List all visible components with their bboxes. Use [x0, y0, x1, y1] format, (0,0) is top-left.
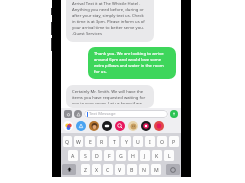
staticText: Z — [84, 166, 87, 173]
button[interactable]: Hello John Smith, this is your VIP Pre-A… — [66, 0, 154, 42]
button[interactable]: M — [151, 164, 161, 175]
button[interactable]: A — [68, 150, 78, 161]
staticText: S — [84, 152, 87, 159]
staticText: V — [118, 166, 122, 173]
button[interactable]: Z — [81, 164, 90, 175]
staticText: N — [142, 166, 146, 173]
button[interactable]: Apps — [74, 110, 82, 118]
button[interactable]: R — [97, 136, 107, 147]
staticText: M — [154, 166, 159, 173]
button[interactable]: App 6 — [141, 121, 151, 131]
button[interactable]: F — [104, 150, 114, 161]
button[interactable]: App 2 — [89, 121, 99, 131]
staticText: J — [144, 152, 146, 159]
button[interactable]: L — [164, 150, 174, 161]
staticText: I — [149, 138, 151, 145]
staticText: D — [95, 152, 99, 159]
button[interactable]: H — [128, 150, 138, 161]
button[interactable]: App 4 — [115, 121, 125, 131]
button[interactable]: Backspace — [166, 164, 180, 175]
button[interactable]: I — [145, 136, 155, 147]
staticText: E — [89, 138, 92, 145]
staticText: T — [113, 138, 116, 145]
staticText: X — [95, 166, 99, 173]
staticText: Text Message — [89, 111, 116, 117]
button[interactable]: P — [169, 136, 179, 147]
button[interactable]: D — [92, 150, 102, 161]
button[interactable]: Camera — [64, 110, 72, 118]
button[interactable]: S — [80, 150, 90, 161]
button[interactable]: Q — [63, 136, 72, 147]
button[interactable]: W — [74, 136, 83, 147]
button[interactable]: B — [127, 164, 137, 175]
button[interactable]: C — [103, 164, 113, 175]
staticText: C — [106, 166, 110, 173]
staticText: Thank you. We are looking to arrive arou… — [94, 51, 170, 75]
button[interactable]: Certainly Mr. Smith. We will have the it… — [66, 85, 154, 108]
button[interactable]: X — [92, 164, 101, 175]
staticText: L — [168, 152, 171, 159]
button[interactable]: Text Message — [84, 110, 168, 118]
staticText: F — [108, 152, 111, 159]
button[interactable]: E — [85, 136, 95, 147]
staticText: B — [130, 166, 134, 173]
staticText: Hello John Smith, this is your VIP Pre-A… — [72, 0, 148, 37]
staticText: G — [119, 152, 123, 159]
staticText: U — [136, 138, 140, 145]
button[interactable]: Y — [121, 136, 131, 147]
staticText: H — [131, 152, 135, 159]
staticText: K — [155, 152, 159, 159]
button[interactable]: App 1 — [76, 121, 86, 131]
button[interactable]: U — [133, 136, 143, 147]
button[interactable]: Thank you. We are looking to arrive arou… — [88, 47, 176, 79]
button[interactable]: Shift — [62, 164, 76, 175]
button[interactable]: J — [140, 150, 150, 161]
button[interactable]: App 3 — [102, 121, 112, 131]
staticText: W — [76, 138, 81, 145]
button[interactable]: V — [115, 164, 125, 175]
button[interactable]: K — [152, 150, 162, 161]
staticText: Certainly Mr. Smith. We will have the it… — [72, 89, 148, 104]
button[interactable]: G — [116, 150, 126, 161]
button[interactable]: App 0 — [63, 121, 73, 131]
staticText: A — [71, 152, 75, 159]
button[interactable]: App 7 — [154, 121, 164, 131]
staticText: Y — [125, 138, 128, 145]
button[interactable]: O — [157, 136, 167, 147]
button[interactable]: T — [109, 136, 119, 147]
staticText: P — [172, 138, 176, 145]
button[interactable]: N — [139, 164, 149, 175]
button[interactable]: App 5 — [128, 121, 138, 131]
staticText: R — [100, 138, 104, 145]
button[interactable]: Send — [170, 110, 178, 118]
staticText: O — [160, 138, 165, 145]
staticText: Q — [65, 138, 70, 145]
